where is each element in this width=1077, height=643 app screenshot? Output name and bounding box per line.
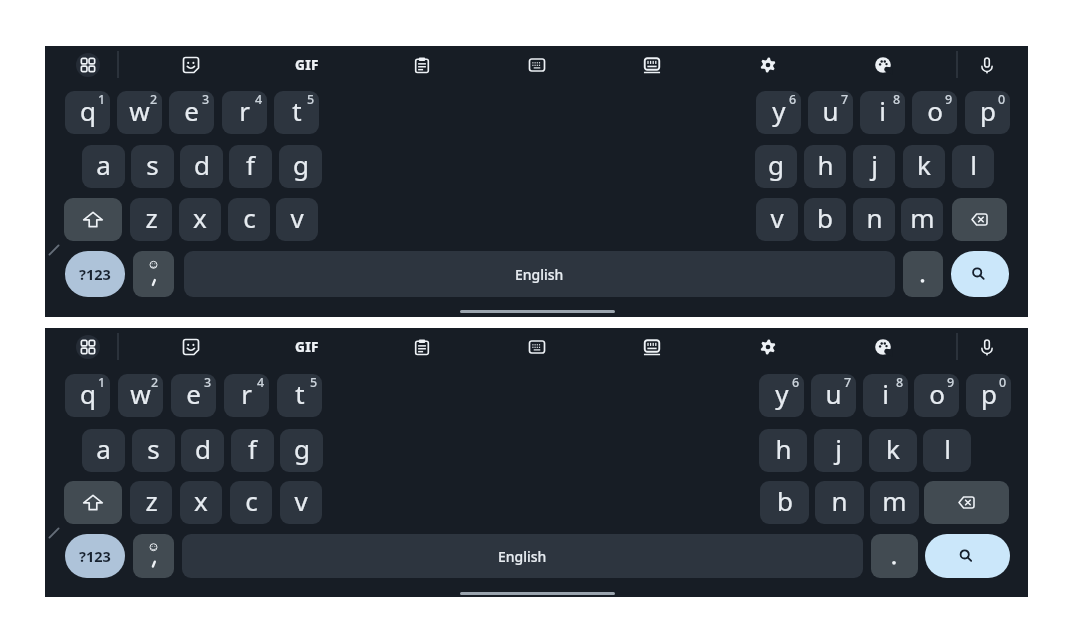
button[interactable]: s <box>132 429 175 472</box>
button[interactable]: Emoji and comma <box>133 251 174 297</box>
button[interactable]: n <box>853 198 895 241</box>
button[interactable]: g <box>755 145 797 188</box>
button[interactable]: u <box>811 374 856 417</box>
button[interactable]: Themes <box>868 332 898 362</box>
staticText: 4 <box>255 91 263 108</box>
button[interactable]: d <box>181 429 224 472</box>
staticText: GIF <box>295 338 319 356</box>
button[interactable]: t <box>274 91 319 134</box>
button[interactable]: f <box>229 145 272 188</box>
button[interactable]: English <box>184 251 895 297</box>
staticText: x <box>193 200 207 235</box>
button[interactable]: Stickers <box>176 332 206 362</box>
button[interactable]: Emoji and comma <box>133 534 174 578</box>
button[interactable]: n <box>815 481 864 524</box>
button[interactable]: z <box>130 481 172 524</box>
button[interactable]: w <box>118 374 163 417</box>
button[interactable]: c <box>228 198 270 241</box>
button[interactable]: r <box>224 374 269 417</box>
button[interactable]: p <box>966 374 1011 417</box>
button[interactable]: o <box>912 91 957 134</box>
button[interactable]: Clipboard <box>407 50 437 80</box>
button[interactable]: s <box>131 145 174 188</box>
button[interactable]: Search <box>951 251 1009 297</box>
button[interactable]: a <box>82 145 125 188</box>
button[interactable]: y <box>759 374 804 417</box>
button[interactable]: Shift <box>64 198 122 241</box>
button[interactable]: l <box>923 429 971 472</box>
button[interactable]: i <box>860 91 905 134</box>
button[interactable]: g <box>279 145 322 188</box>
button[interactable]: k <box>869 429 917 472</box>
button[interactable]: One-handed mode <box>637 332 667 362</box>
button[interactable]: z <box>130 198 172 241</box>
button[interactable] <box>871 534 918 578</box>
button[interactable]: g <box>280 429 323 472</box>
button[interactable]: l <box>952 145 994 188</box>
staticText: m <box>882 483 907 518</box>
button[interactable]: GIF <box>290 56 324 74</box>
button[interactable]: h <box>804 145 846 188</box>
button[interactable]: t <box>277 374 322 417</box>
button[interactable]: Shift <box>64 481 122 524</box>
button[interactable]: i <box>863 374 908 417</box>
button[interactable]: a <box>82 429 125 472</box>
button[interactable]: v <box>276 198 318 241</box>
button[interactable]: d <box>180 145 223 188</box>
button[interactable]: v <box>280 481 322 524</box>
button[interactable]: q <box>65 374 110 417</box>
button[interactable]: b <box>804 198 846 241</box>
button[interactable]: Clipboard <box>407 332 437 362</box>
button[interactable]: v <box>756 198 798 241</box>
button[interactable]: e <box>169 91 214 134</box>
button[interactable]: f <box>231 429 274 472</box>
button[interactable]: b <box>760 481 809 524</box>
button[interactable]: x <box>179 198 221 241</box>
staticText: 8 <box>893 91 901 108</box>
button[interactable]: Themes <box>868 50 898 80</box>
button[interactable]: Voice input <box>972 50 1002 80</box>
button[interactable]: j <box>814 429 862 472</box>
button[interactable]: r <box>222 91 267 134</box>
button[interactable]: Open keyboard modes <box>73 332 103 362</box>
button[interactable]: k <box>903 145 945 188</box>
staticText: ?123 <box>79 546 111 566</box>
button[interactable]: m <box>901 198 943 241</box>
staticText: p <box>980 93 996 128</box>
button[interactable]: Floating keyboard <box>522 50 552 80</box>
button[interactable]: Backspace <box>924 481 1009 524</box>
button[interactable]: p <box>965 91 1010 134</box>
button[interactable]: Stickers <box>176 50 206 80</box>
button[interactable]: h <box>759 429 807 472</box>
button[interactable]: ?123 <box>65 251 125 297</box>
button[interactable]: Search <box>925 534 1010 578</box>
button[interactable]: GIF <box>290 338 324 356</box>
button[interactable]: o <box>914 374 959 417</box>
staticText: l <box>970 147 977 182</box>
staticText: 1 <box>98 91 106 108</box>
button[interactable]: Backspace <box>952 198 1007 241</box>
button[interactable]: y <box>756 91 801 134</box>
button[interactable]: c <box>230 481 272 524</box>
button[interactable]: Settings <box>753 50 783 80</box>
button[interactable]: English <box>182 534 863 578</box>
button[interactable]: Settings <box>753 332 783 362</box>
button[interactable]: m <box>870 481 919 524</box>
button[interactable]: Floating keyboard <box>522 332 552 362</box>
button[interactable]: e <box>171 374 216 417</box>
button[interactable]: ?123 <box>65 534 125 578</box>
staticText: t <box>292 93 302 128</box>
staticText: u <box>822 93 839 128</box>
button[interactable]: Voice input <box>972 332 1002 362</box>
button[interactable]: x <box>180 481 222 524</box>
button[interactable]: q <box>65 91 110 134</box>
staticText: c <box>243 200 256 235</box>
staticText: 3 <box>204 374 212 391</box>
button[interactable]: u <box>808 91 853 134</box>
button[interactable]: One-handed mode <box>637 50 667 80</box>
button[interactable]: Open keyboard modes <box>73 50 103 80</box>
button[interactable]: j <box>853 145 895 188</box>
button[interactable] <box>903 251 943 297</box>
staticText: g <box>294 431 310 466</box>
button[interactable]: w <box>117 91 162 134</box>
